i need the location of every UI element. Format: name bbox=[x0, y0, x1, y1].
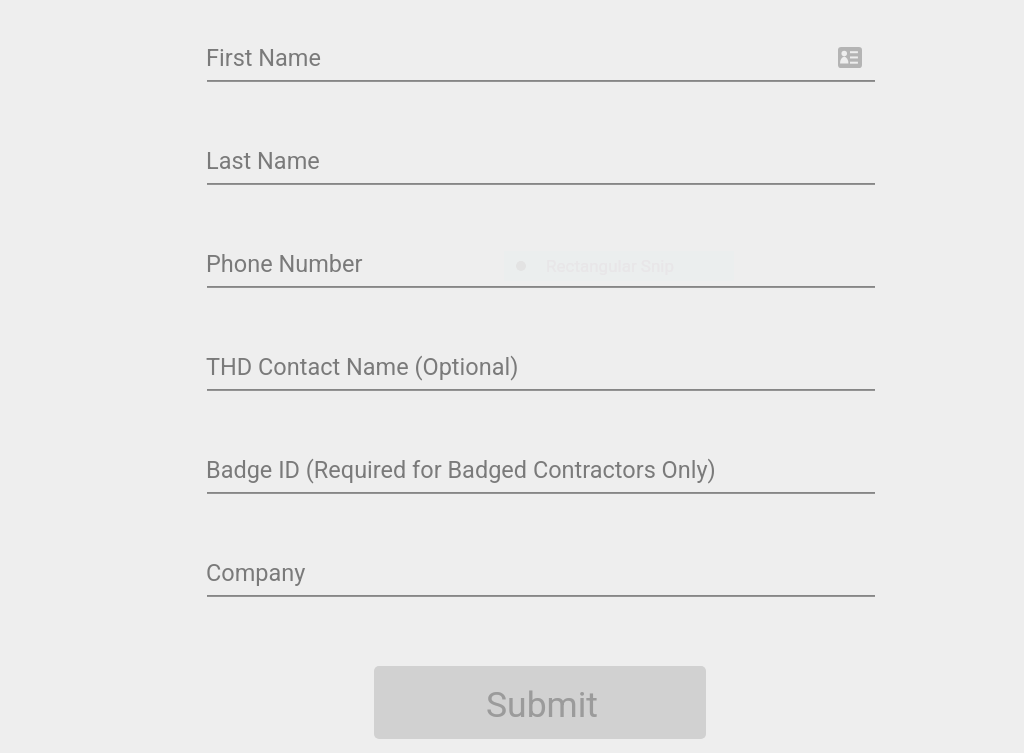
staticText: First Name bbox=[206, 44, 321, 72]
staticText: Phone Number bbox=[206, 250, 363, 278]
button[interactable]: THD Contact Name (Optional) bbox=[207, 345, 875, 392]
button[interactable]: Company bbox=[207, 551, 875, 598]
button[interactable]: Pick from contacts bbox=[838, 47, 862, 68]
button[interactable]: Submit bbox=[374, 666, 706, 739]
staticText: Submit bbox=[486, 684, 598, 726]
staticText: Last Name bbox=[206, 147, 320, 175]
button[interactable]: Phone Number bbox=[207, 242, 875, 289]
staticText: THD Contact Name (Optional) bbox=[206, 353, 519, 381]
button[interactable]: First Name bbox=[207, 36, 875, 83]
staticText: Badge ID (Required for Badged Contractor… bbox=[206, 456, 716, 484]
button[interactable]: Badge ID (Required for Badged Contractor… bbox=[207, 448, 875, 495]
button[interactable]: Last Name bbox=[207, 139, 875, 186]
staticText: Company bbox=[206, 559, 306, 587]
